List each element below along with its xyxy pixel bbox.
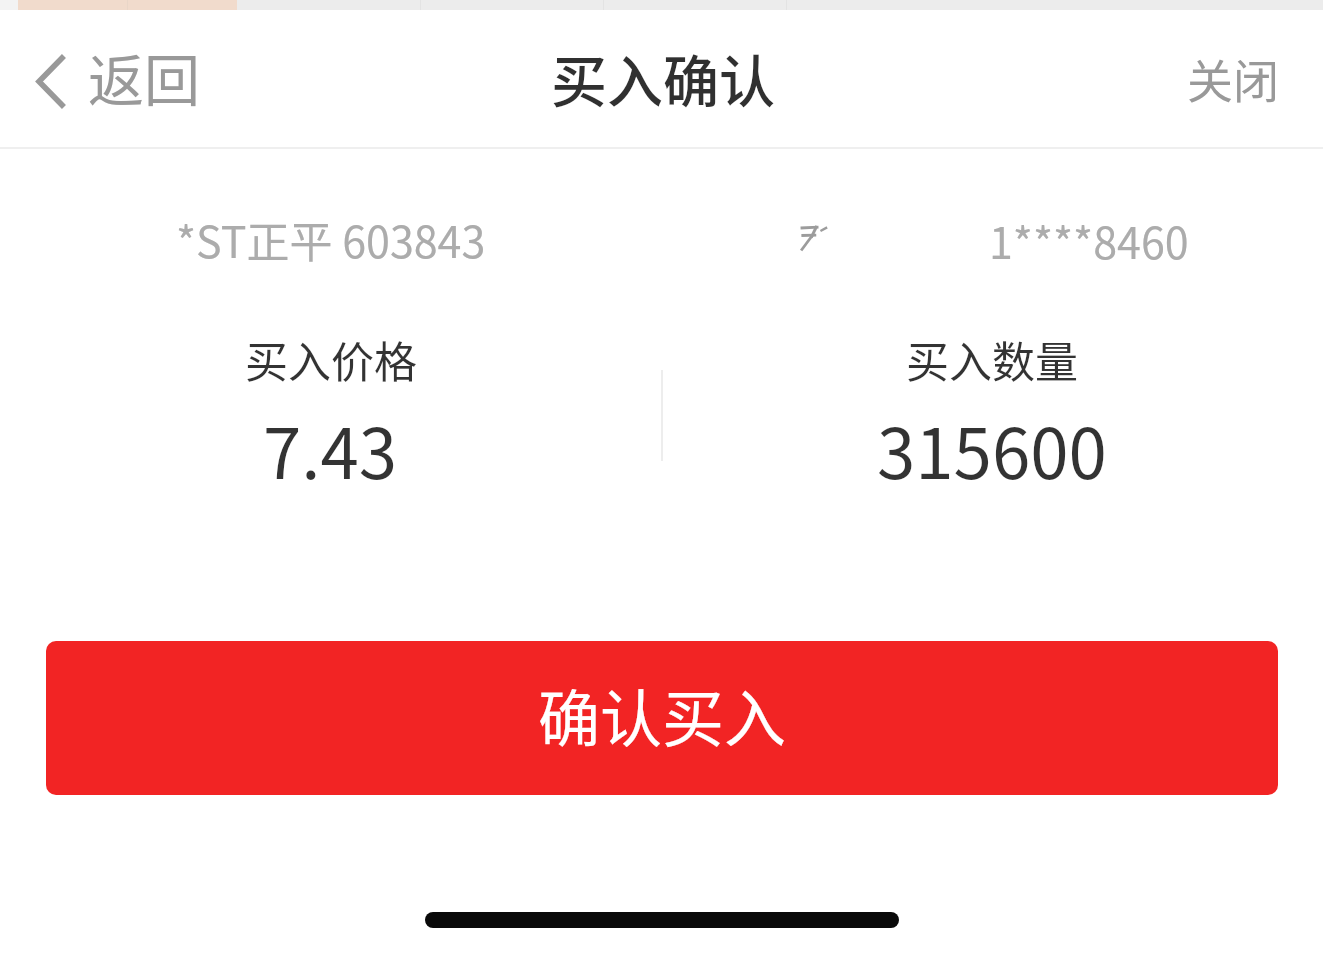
staticText: 1****8460 <box>989 209 1189 271</box>
staticText: 买入数量 <box>906 328 1078 390</box>
staticText: 买入确认 <box>551 37 775 118</box>
staticText: *ST正平 603843 <box>176 208 486 270</box>
staticText: 关闭 <box>1187 45 1279 112</box>
other: 返回 <box>36 55 64 108</box>
staticText: 确认买入 <box>538 670 787 760</box>
button[interactable]: 返回 <box>0 23 226 140</box>
staticText: 买入价格 <box>245 328 417 390</box>
button[interactable]: 关闭 <box>1139 21 1323 136</box>
staticText: 315600 <box>877 399 1107 499</box>
staticText: 返回 <box>88 36 200 117</box>
button[interactable]: 确认买入 <box>46 641 1278 795</box>
staticText: 7.43 <box>263 399 398 499</box>
